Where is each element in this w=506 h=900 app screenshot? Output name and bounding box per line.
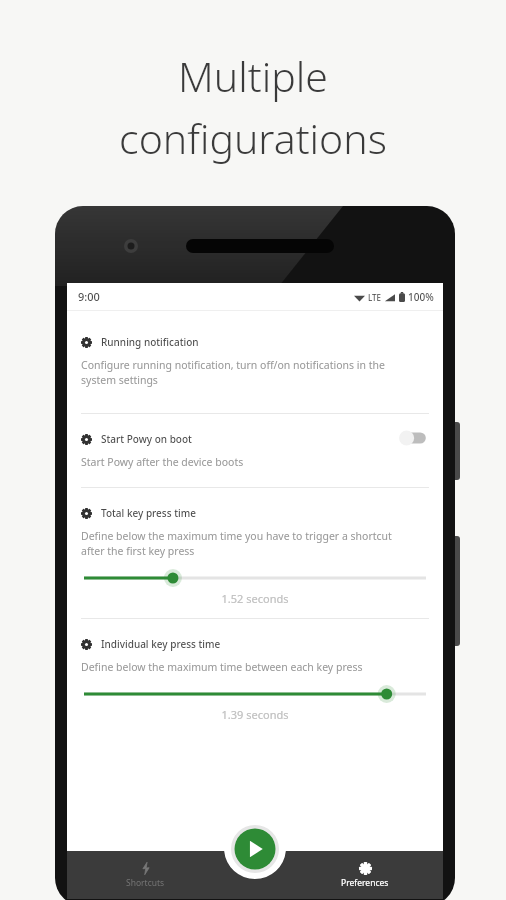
staticText: 9:00	[78, 289, 100, 304]
staticText: LTE	[368, 292, 382, 303]
button[interactable]	[81, 570, 429, 586]
staticText: 1.39 seconds	[81, 707, 429, 722]
staticText: Define below the maximum time you have t…	[81, 529, 392, 558]
staticText: 1.52 seconds	[81, 591, 429, 606]
button[interactable]: Start Powy on boot toggle	[397, 429, 429, 447]
button[interactable]: Start Powy on boot	[67, 432, 443, 469]
staticText: Individual key press time	[101, 637, 221, 651]
button[interactable]: Preferences	[286, 851, 443, 899]
button[interactable]	[81, 686, 429, 702]
staticText: configurations	[119, 110, 387, 166]
staticText: Preferences	[341, 877, 389, 889]
staticText: Start Powy after the device boots	[81, 455, 244, 469]
button[interactable]: Individual key press time	[67, 637, 443, 722]
staticText: Define below the maximum time between ea…	[81, 660, 363, 674]
staticText: Configure running notification, turn off…	[81, 358, 385, 387]
button[interactable]: Running notification	[67, 335, 443, 387]
staticText: Shortcuts	[126, 877, 165, 889]
button[interactable]: Start	[227, 825, 283, 873]
staticText: Multiple	[178, 48, 328, 104]
button[interactable]: Total key press time	[67, 506, 443, 606]
staticText: Total key press time	[101, 506, 196, 520]
staticText: Running notification	[101, 335, 199, 349]
button[interactable]: Shortcuts	[67, 851, 224, 899]
staticText: Start Powy on boot	[101, 432, 192, 446]
staticText: 100%	[408, 290, 434, 304]
